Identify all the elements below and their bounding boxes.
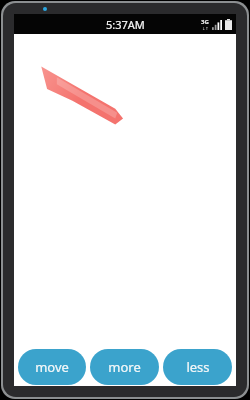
staticText: less [186, 358, 210, 376]
button[interactable]: more [90, 349, 159, 385]
button[interactable]: less [163, 349, 232, 385]
staticText: 3G [201, 18, 209, 26]
staticText: 5:37AM [106, 17, 145, 32]
button[interactable]: move [18, 349, 86, 385]
staticText: more [108, 358, 141, 376]
staticText: move [35, 358, 69, 376]
staticText: ↓↑ [202, 26, 209, 31]
